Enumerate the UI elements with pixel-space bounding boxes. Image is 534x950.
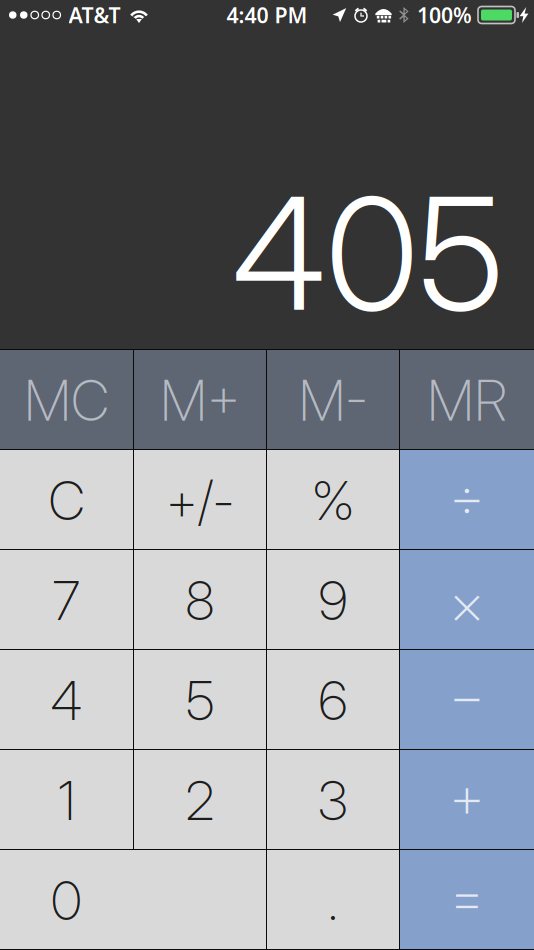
staticText: 7 [52, 568, 80, 633]
staticText: 6 [318, 668, 347, 733]
button[interactable]: 7 [0, 550, 133, 649]
staticText: 5 [186, 668, 214, 733]
staticText: 0 [51, 868, 82, 933]
staticText: M- [298, 367, 367, 434]
staticText: +/- [166, 468, 234, 533]
button[interactable]: × [400, 550, 534, 649]
button[interactable]: 6 [267, 650, 399, 749]
staticText: ÷ [449, 461, 484, 532]
staticText: 100% [417, 1, 472, 29]
button[interactable]: MR [400, 350, 534, 449]
staticText: 1 [58, 768, 75, 833]
staticText: − [449, 660, 484, 731]
staticText: % [311, 468, 354, 533]
button[interactable]: C [0, 450, 133, 549]
button[interactable]: = [400, 850, 534, 949]
button[interactable]: +/- [134, 450, 266, 549]
staticText: 405 [232, 160, 504, 347]
button[interactable]: MC [0, 350, 133, 449]
button[interactable]: − [400, 650, 534, 749]
button[interactable]: % [267, 450, 399, 549]
button[interactable]: + [400, 750, 534, 849]
button[interactable]: 1 [0, 750, 133, 849]
staticText: M+ [160, 367, 240, 434]
button[interactable]: M+ [134, 350, 266, 449]
staticText: . [327, 868, 338, 933]
staticText: 2 [185, 768, 214, 833]
staticText: = [449, 861, 484, 932]
button[interactable]: 4 [0, 650, 133, 749]
button[interactable]: . [267, 850, 399, 949]
staticText: + [449, 761, 484, 832]
staticText: MC [24, 367, 109, 434]
button[interactable]: M- [267, 350, 399, 449]
staticText: 4:40 PM [226, 1, 307, 29]
button[interactable]: 5 [134, 650, 266, 749]
staticText: MR [427, 367, 507, 434]
staticText: 3 [318, 768, 348, 833]
button[interactable]: 2 [134, 750, 266, 849]
button[interactable]: 3 [267, 750, 399, 849]
button[interactable]: 9 [267, 550, 399, 649]
staticText: C [48, 468, 84, 533]
button[interactable]: 8 [134, 550, 266, 649]
staticText: 9 [318, 568, 347, 633]
button[interactable]: ÷ [400, 450, 534, 549]
staticText: × [449, 568, 484, 639]
staticText: 8 [185, 568, 214, 633]
staticText: AT&T [68, 1, 120, 29]
button[interactable]: 0 [0, 850, 266, 949]
staticText: 4 [50, 668, 82, 733]
